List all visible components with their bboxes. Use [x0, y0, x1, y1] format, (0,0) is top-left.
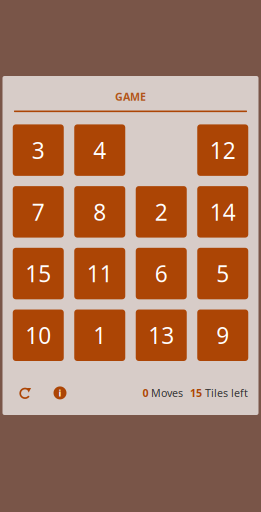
button[interactable]: Restart: [13, 387, 31, 399]
button[interactable]: 10: [13, 309, 64, 361]
button[interactable]: 4: [74, 124, 125, 176]
button[interactable]: 8: [74, 186, 125, 238]
button[interactable]: 11: [74, 248, 125, 299]
staticText: 12: [210, 135, 236, 165]
button[interactable]: 3: [13, 124, 64, 176]
staticText: 3: [32, 135, 45, 165]
staticText: 4: [93, 135, 106, 165]
button[interactable]: 2: [136, 186, 187, 238]
staticText: 15: [25, 258, 51, 289]
staticText: 10: [25, 320, 51, 350]
staticText: 6: [155, 258, 168, 289]
staticText: 15: [190, 386, 202, 400]
button[interactable]: 5: [197, 248, 248, 299]
staticText: 14: [210, 197, 236, 227]
button[interactable]: 9: [197, 309, 248, 361]
button[interactable]: 12: [197, 124, 248, 176]
staticText: Tiles left: [205, 386, 248, 400]
staticText: Moves: [151, 386, 183, 400]
staticText: 5: [216, 258, 229, 289]
button[interactable]: 6: [136, 248, 187, 299]
button[interactable]: Info: [53, 386, 66, 399]
staticText: 2: [155, 197, 168, 227]
button[interactable]: 7: [13, 186, 64, 238]
staticText: 13: [148, 320, 174, 350]
staticText: 7: [32, 197, 45, 227]
button[interactable]: 15: [13, 248, 64, 299]
staticText: 0: [142, 386, 148, 400]
staticText: 1: [93, 320, 106, 350]
button[interactable]: 13: [136, 309, 187, 361]
staticText: i: [58, 387, 61, 399]
button[interactable]: 1: [74, 309, 125, 361]
staticText: 8: [93, 197, 106, 227]
button[interactable]: 14: [197, 186, 248, 238]
staticText: GAME: [115, 89, 146, 104]
staticText: 9: [216, 320, 229, 350]
staticText: 11: [87, 258, 113, 289]
